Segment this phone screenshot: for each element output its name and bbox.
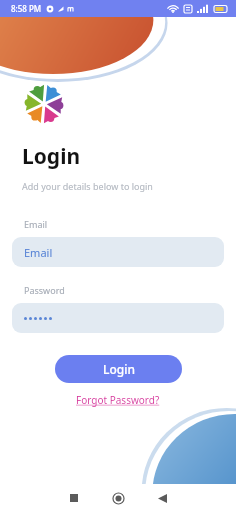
staticText: Password bbox=[24, 284, 65, 296]
staticText: Email bbox=[24, 245, 53, 260]
staticText: Forgot Password? bbox=[76, 393, 160, 407]
button[interactable]: Forgot Password? bbox=[74, 391, 162, 409]
button[interactable]: Home bbox=[96, 484, 140, 512]
button[interactable] bbox=[12, 303, 224, 333]
staticText: Email bbox=[24, 218, 48, 230]
staticText: Login bbox=[103, 361, 135, 377]
button[interactable]: Email bbox=[12, 237, 224, 267]
staticText: 8:58 PM bbox=[11, 3, 42, 14]
staticText: Login bbox=[22, 142, 81, 171]
button[interactable]: Recent apps bbox=[52, 484, 96, 512]
button[interactable]: Back bbox=[140, 484, 184, 512]
staticText: Add your details below to login bbox=[22, 180, 153, 192]
button[interactable]: Login bbox=[55, 355, 182, 383]
